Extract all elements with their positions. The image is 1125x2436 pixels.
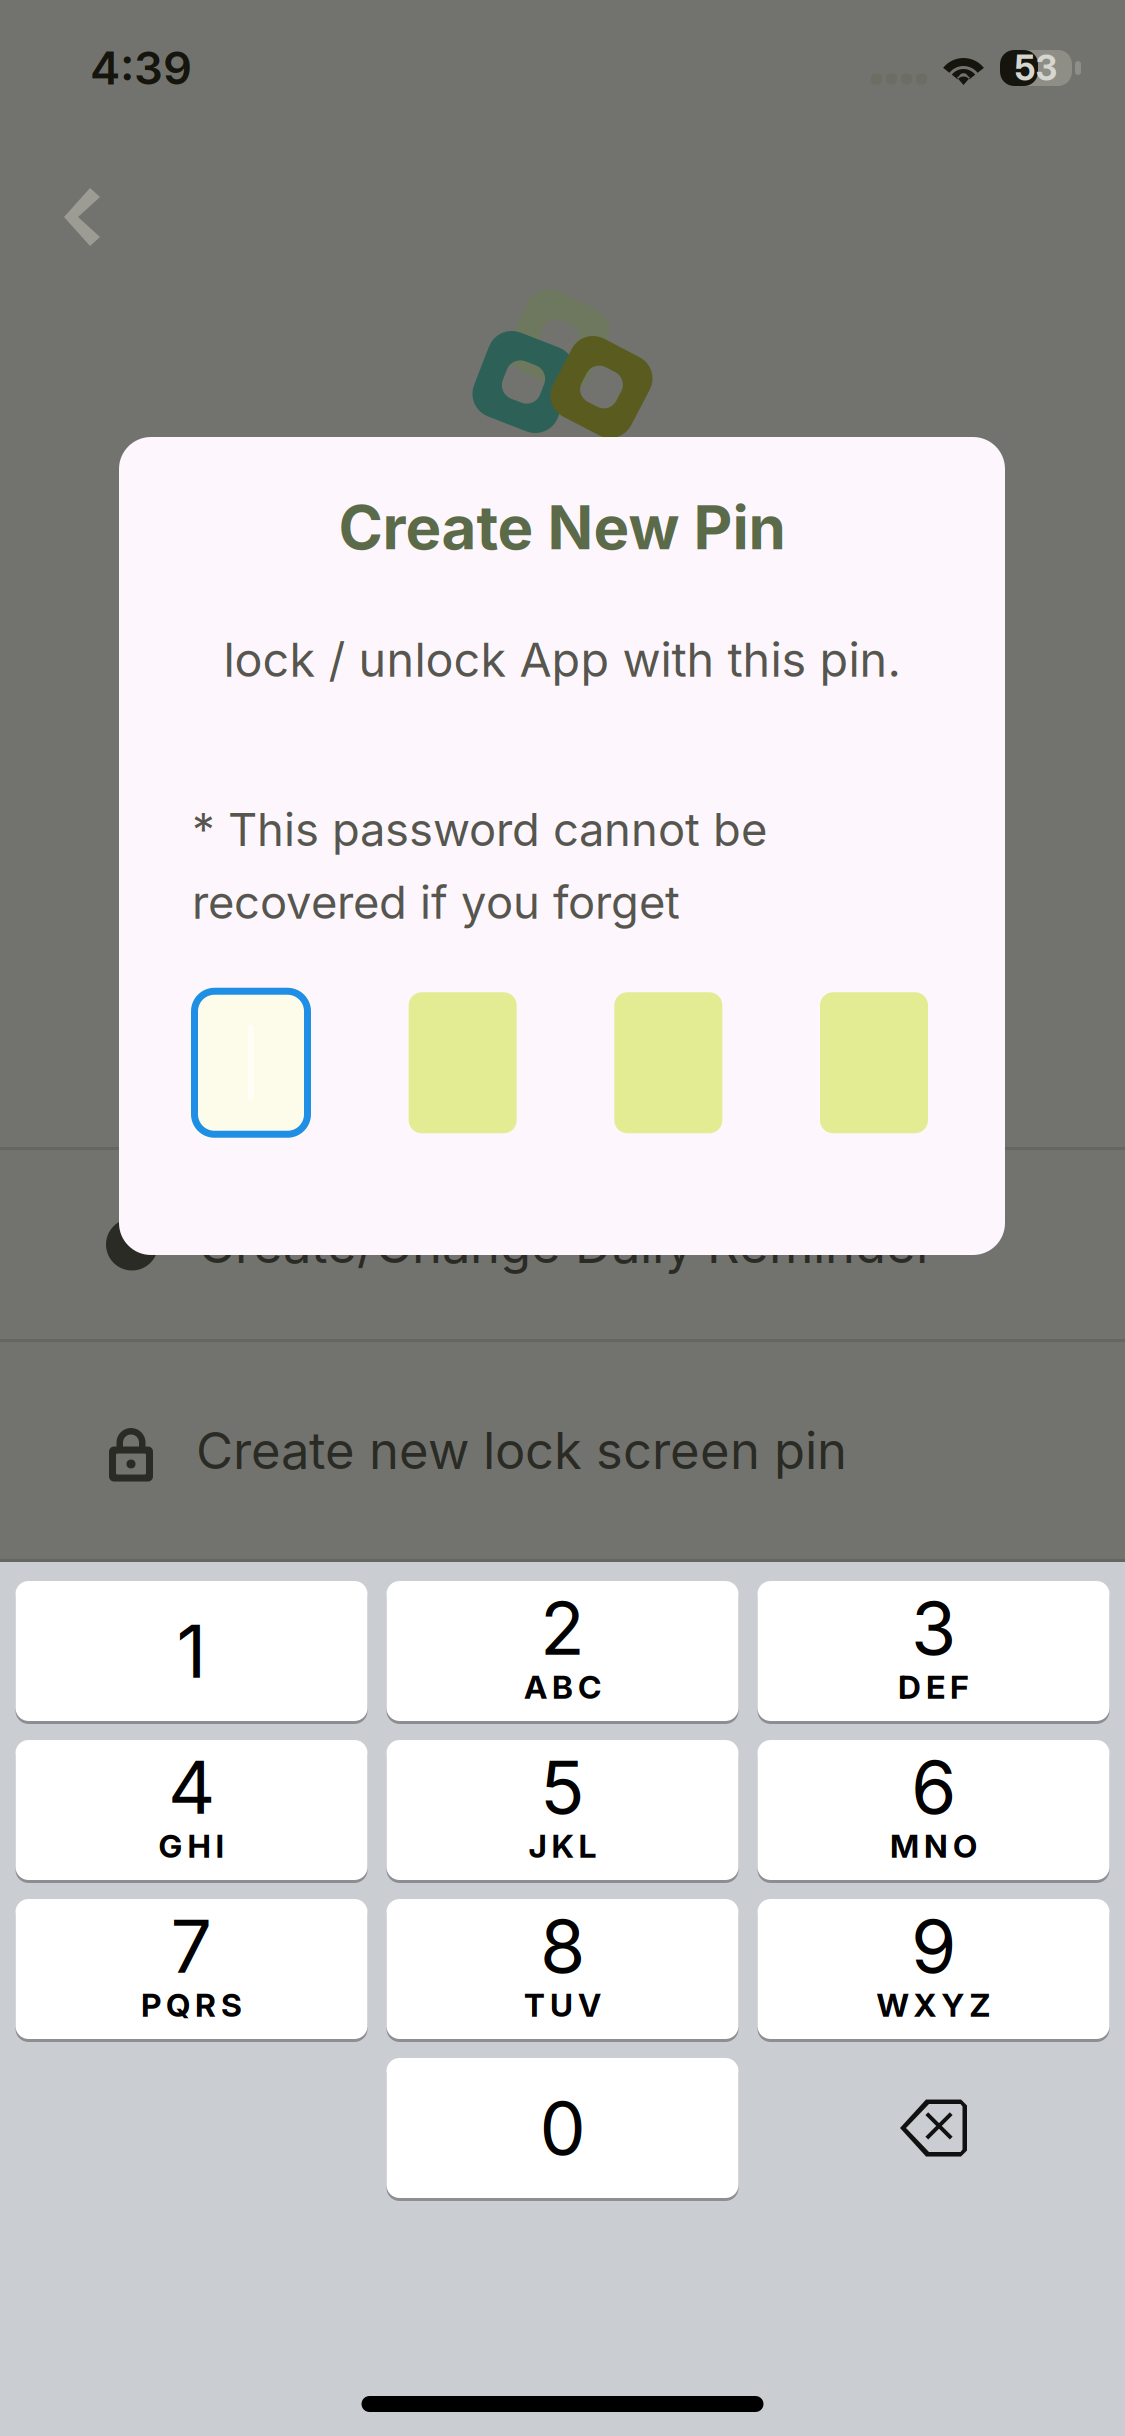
staticText: 9 xyxy=(911,1902,956,1990)
button[interactable]: Create/Change Daily Reminder xyxy=(0,1150,1125,1339)
staticText: GHI xyxy=(158,1827,224,1865)
button[interactable]: 7 xyxy=(15,1899,367,2039)
staticText: 4 xyxy=(168,1743,215,1831)
staticText: PQRS xyxy=(141,1986,242,2024)
staticText: * This password cannot be xyxy=(192,802,767,857)
staticText: 7 xyxy=(170,1902,212,1990)
staticText: 3 xyxy=(911,1584,956,1672)
button[interactable]: Back xyxy=(36,132,128,274)
staticText: 5 xyxy=(540,1743,585,1831)
staticText: Create New Pin xyxy=(338,491,785,564)
staticText: recovered if you forget xyxy=(192,875,680,930)
button[interactable]: 3 xyxy=(757,1581,1109,1721)
staticText: DEF xyxy=(898,1668,969,1706)
button[interactable]: Create new lock screen pin xyxy=(0,1342,1125,1559)
staticText: JKL xyxy=(528,1827,596,1865)
button[interactable]: Delete xyxy=(757,2058,1109,2198)
staticText: 1 xyxy=(176,1607,206,1695)
staticText: TUV xyxy=(524,1986,601,2024)
staticText: WXYZ xyxy=(876,1986,990,2024)
button[interactable]: 2 xyxy=(386,1581,738,1721)
button[interactable]: 9 xyxy=(757,1899,1109,2039)
staticText: 8 xyxy=(540,1902,585,1990)
staticText: Create new lock screen pin xyxy=(196,1420,847,1481)
staticText: 6 xyxy=(911,1743,956,1831)
button[interactable]: 5 xyxy=(386,1740,738,1880)
staticText: 2 xyxy=(540,1584,585,1672)
staticText: 53 xyxy=(1014,47,1057,89)
button[interactable]: 4 xyxy=(15,1740,367,1880)
button[interactable]: 6 xyxy=(757,1740,1109,1880)
staticText: ABC xyxy=(524,1668,601,1706)
button[interactable]: 0 xyxy=(386,2058,738,2198)
staticText: 0 xyxy=(539,2084,585,2172)
staticText: Create/Change Daily Reminder xyxy=(198,1214,935,1275)
button[interactable]: 8 xyxy=(386,1899,738,2039)
staticText: 4:39 xyxy=(90,41,192,95)
button[interactable]: 1 xyxy=(15,1581,367,1721)
staticText: MNO xyxy=(890,1827,977,1865)
staticText: lock / unlock App with this pin. xyxy=(223,632,900,688)
